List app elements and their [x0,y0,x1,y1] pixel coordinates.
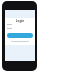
staticText: Login [5,19,35,23]
button[interactable]: Sign in [7,33,33,38]
